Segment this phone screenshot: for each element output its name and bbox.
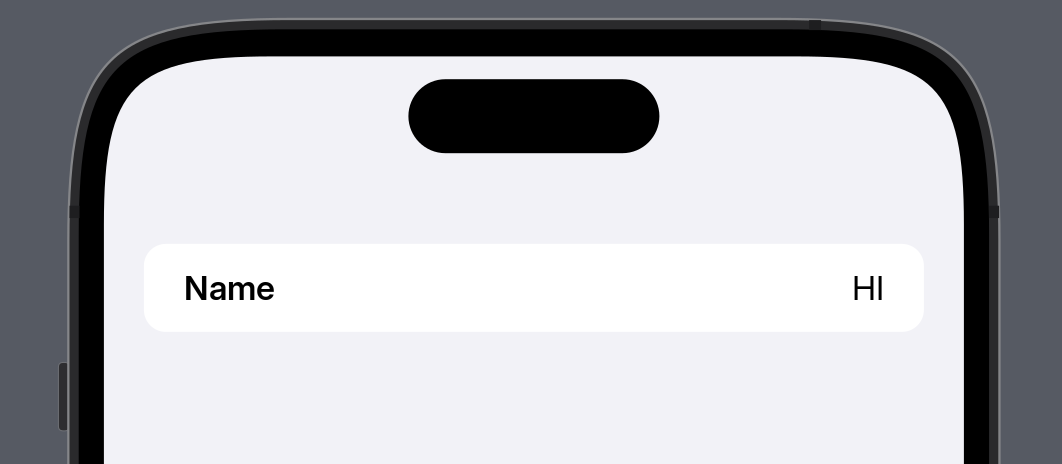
button[interactable]: Name	[144, 244, 924, 332]
staticText: Name	[184, 268, 275, 308]
staticText: HI	[852, 268, 884, 308]
